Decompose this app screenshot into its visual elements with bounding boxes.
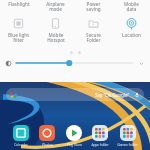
button[interactable] (16, 58, 133, 68)
button[interactable]: Calendar (12, 124, 30, 142)
button[interactable]: Flashlight (0, 0, 37, 14)
staticText: Airplane mode (46, 1, 65, 13)
other: Brightness (5, 60, 12, 67)
button[interactable]: Mobile Hotspot (37, 14, 74, 48)
button[interactable]: Games folder (119, 124, 137, 142)
other: Google (10, 91, 17, 98)
button[interactable]: Play Store (65, 124, 83, 142)
staticText: Blue light filter (8, 32, 29, 44)
button[interactable]: Location (112, 14, 150, 48)
staticText: Calendar (14, 143, 28, 147)
button[interactable]: Expand brightness settings (137, 59, 145, 67)
staticText: Apps folder (91, 143, 109, 147)
staticText: Say "Ok Google" (95, 92, 130, 98)
staticText: Mobile data (124, 1, 139, 13)
staticText: Power saving (86, 1, 101, 13)
button[interactable]: Photos (38, 124, 56, 142)
staticText: Location (122, 32, 141, 38)
button[interactable]: Airplane mode (37, 0, 74, 14)
staticText: Play Store (67, 143, 82, 147)
staticText: Mobile Hotspot (47, 32, 65, 44)
staticText: Flashlight (8, 1, 30, 7)
button[interactable]: Apps folder (91, 124, 109, 142)
staticText: Photos (42, 143, 53, 147)
button[interactable]: Google (6, 88, 144, 101)
button[interactable]: Secure Folder (74, 14, 112, 48)
button[interactable]: Blue light filter (0, 14, 37, 48)
staticText: Secure Folder (86, 32, 101, 44)
staticText: Games folder (117, 143, 138, 147)
button[interactable]: Power saving (74, 0, 112, 14)
other: Voice search (134, 92, 140, 98)
button[interactable]: Mobile data (112, 0, 150, 14)
